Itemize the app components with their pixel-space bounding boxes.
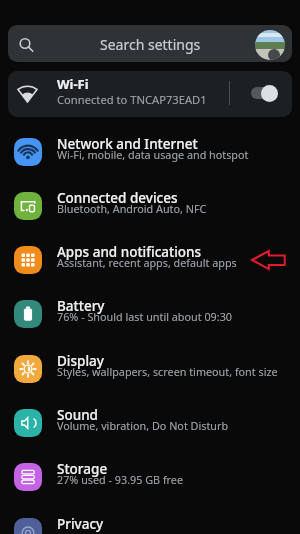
- button[interactable]: Wi-Fi: [8, 71, 292, 117]
- button[interactable]: Search settings: [8, 25, 292, 62]
- staticText: Assistant, recent apps, default apps: [57, 255, 237, 270]
- button[interactable]: Connected devices: [0, 179, 300, 233]
- staticText: Privacy: [57, 515, 104, 533]
- staticText: Connected to TNCAP73EAD1: [57, 92, 207, 107]
- staticText: Wi-Fi: [57, 75, 89, 93]
- button[interactable]: Battery: [0, 287, 300, 341]
- button[interactable]: Storage: [0, 450, 300, 504]
- staticText: Battery: [57, 297, 105, 315]
- button[interactable]: Network and Internet: [0, 125, 300, 179]
- staticText: Storage: [57, 460, 108, 478]
- staticText: Connected devices: [57, 189, 178, 207]
- staticText: Styles, wallpapers, screen timeout, font…: [57, 364, 278, 379]
- staticText: Volume, vibration, Do Not Disturb: [57, 418, 229, 433]
- staticText: Search settings: [100, 35, 201, 54]
- button[interactable]: Apps and notifications: [0, 233, 300, 287]
- staticText: 27% used - 93.95 GB free: [57, 472, 184, 487]
- button[interactable]: [251, 87, 278, 99]
- staticText: Apps and notifications: [57, 243, 202, 261]
- staticText: Wi-Fi, mobile, data usage and hotspot: [57, 147, 249, 162]
- staticText: Network and Internet: [57, 135, 198, 153]
- staticText: 76% - Should last until about 09:30: [57, 309, 232, 324]
- button[interactable]: Privacy: [0, 505, 300, 534]
- staticText: Sound: [57, 406, 98, 424]
- button[interactable]: Display: [0, 342, 300, 396]
- button[interactable]: Sound: [0, 396, 300, 450]
- staticText: Display: [57, 352, 104, 370]
- staticText: Bluetooth, Android Auto, NFC: [57, 201, 207, 216]
- button[interactable]: [255, 30, 285, 60]
